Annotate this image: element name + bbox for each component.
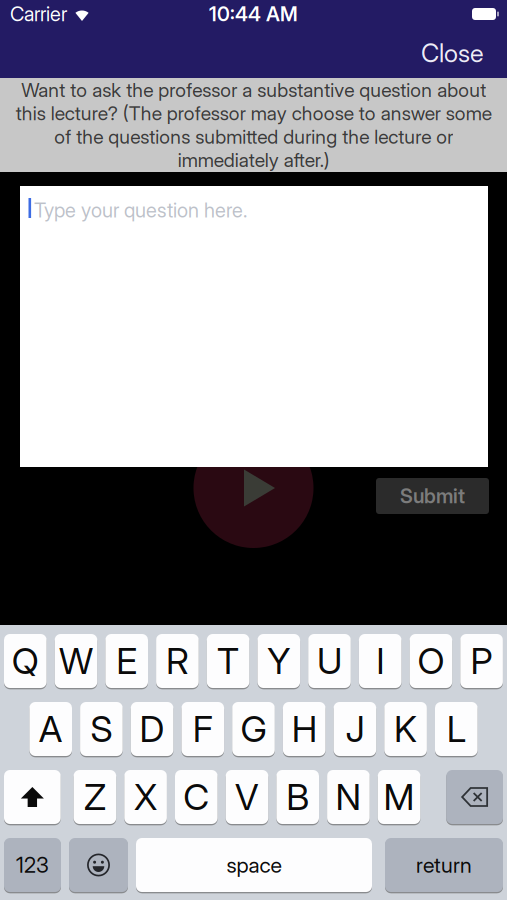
button[interactable]: B	[276, 769, 319, 825]
staticText: O	[417, 639, 444, 683]
button[interactable]: Type your question here.	[20, 186, 488, 467]
staticText: R	[166, 639, 189, 683]
button[interactable]: Shift	[4, 769, 61, 825]
button[interactable]: C	[175, 769, 218, 825]
button[interactable]: O	[410, 633, 452, 689]
staticText: Type your question here.	[34, 198, 247, 222]
staticText: C	[183, 775, 209, 819]
staticText: space	[226, 852, 281, 878]
button[interactable]: V	[226, 769, 268, 825]
staticText: B	[286, 775, 309, 819]
button[interactable]: H	[283, 701, 325, 757]
staticText: Close	[421, 38, 484, 68]
staticText: E	[116, 639, 137, 683]
button[interactable]: G	[232, 701, 275, 757]
button[interactable]: Q	[4, 633, 47, 689]
staticText: Want to ask the professor a substantive …	[15, 78, 491, 172]
button[interactable]: F	[181, 701, 224, 757]
staticText: 10:44 AM	[209, 2, 298, 26]
staticText: X	[134, 775, 157, 819]
staticText: L	[447, 707, 466, 751]
staticText: M	[384, 775, 415, 819]
staticText: D	[140, 707, 165, 751]
staticText: N	[335, 775, 361, 819]
button[interactable]: E	[105, 633, 148, 689]
staticText: return	[416, 852, 472, 878]
staticText: U	[317, 639, 342, 683]
staticText: I	[376, 639, 384, 683]
button[interactable]: Z	[74, 769, 116, 825]
staticText: T	[217, 639, 239, 683]
staticText: Z	[84, 775, 106, 819]
staticText: F	[193, 707, 213, 751]
button[interactable]: Emoji	[69, 837, 128, 893]
staticText: 123	[16, 852, 49, 878]
button[interactable]: Y	[257, 633, 300, 689]
staticText: K	[394, 707, 417, 751]
button[interactable]: U	[308, 633, 351, 689]
button[interactable]: P	[460, 633, 503, 689]
button[interactable]: Submit	[376, 478, 489, 514]
button[interactable]: Close	[421, 38, 484, 68]
button[interactable]: M	[378, 769, 420, 825]
button[interactable]: K	[384, 701, 427, 757]
staticText: G	[240, 707, 266, 751]
button[interactable]: A	[29, 701, 72, 757]
staticText: Carrier	[10, 2, 67, 26]
button[interactable]: S	[80, 701, 123, 757]
staticText: Y	[267, 639, 290, 683]
staticText: V	[235, 775, 259, 819]
staticText: J	[345, 707, 364, 751]
button[interactable]: D	[131, 701, 173, 757]
button[interactable]: I	[359, 633, 401, 689]
button[interactable]: return	[385, 837, 503, 893]
staticText: Q	[12, 639, 39, 683]
button[interactable]: W	[55, 633, 97, 689]
button[interactable]: Delete	[446, 769, 503, 825]
button[interactable]: space	[136, 837, 372, 893]
button[interactable]: 123	[4, 837, 61, 893]
button[interactable]: X	[124, 769, 167, 825]
staticText: A	[39, 707, 63, 751]
button[interactable]: T	[207, 633, 249, 689]
staticText: Submit	[400, 484, 465, 508]
staticText: W	[59, 639, 93, 683]
button[interactable]: L	[435, 701, 478, 757]
button[interactable]: Play	[193, 428, 313, 548]
button[interactable]: N	[327, 769, 370, 825]
staticText: H	[292, 707, 317, 751]
staticText: S	[90, 707, 112, 751]
button[interactable]: J	[334, 701, 376, 757]
button[interactable]: R	[156, 633, 199, 689]
staticText: P	[471, 639, 493, 683]
